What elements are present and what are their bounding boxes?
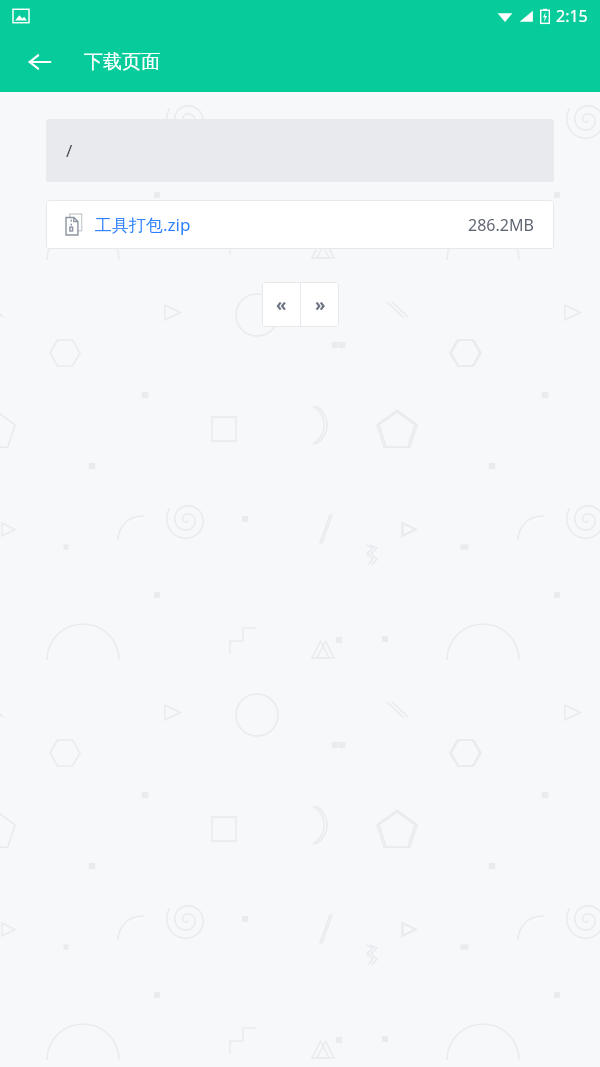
button[interactable]: Back bbox=[18, 40, 62, 84]
button[interactable]: Previous page bbox=[262, 282, 300, 327]
staticText: 工具打包.zip bbox=[95, 213, 191, 236]
staticText: « bbox=[276, 293, 287, 316]
staticText: 286.2MB bbox=[468, 214, 534, 236]
staticText: » bbox=[315, 293, 326, 316]
staticText: 2:15 bbox=[556, 5, 588, 27]
button[interactable]: 工具打包.zip bbox=[46, 200, 554, 249]
staticText: / bbox=[66, 139, 73, 162]
button[interactable]: / bbox=[46, 119, 554, 182]
staticText: 下载页面 bbox=[84, 50, 160, 74]
button[interactable]: Next page bbox=[301, 282, 339, 327]
